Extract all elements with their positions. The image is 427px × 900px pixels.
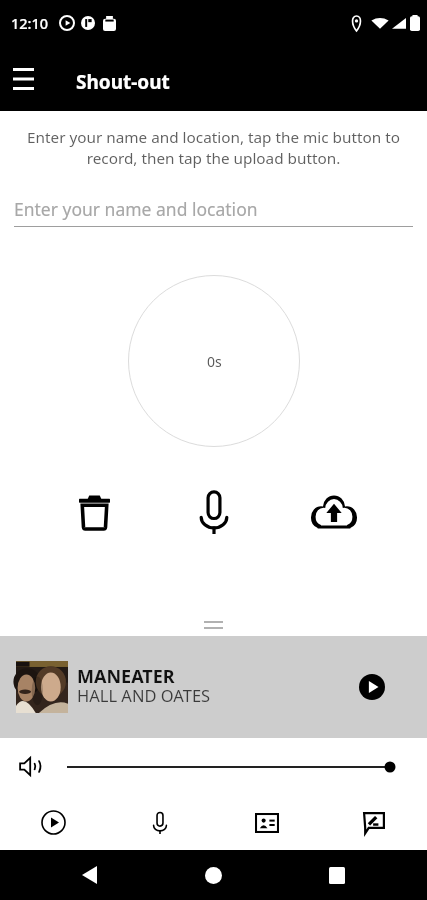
button[interactable]: Recents [309, 850, 364, 900]
staticText: Enter your name and location, tap the mi… [13, 127, 414, 169]
button[interactable]: Review [320, 795, 427, 850]
button[interactable]: Play audio [0, 795, 106, 850]
button[interactable]: Record [188, 482, 240, 542]
button[interactable]: MANEATER [0, 636, 427, 738]
staticText: MANEATER [77, 664, 175, 689]
button[interactable]: Upload [240, 482, 427, 542]
staticText: Enter your name and location [14, 197, 258, 221]
button[interactable]: Photo [213, 795, 320, 850]
staticText: HALL AND OATES [77, 684, 211, 706]
staticText: 0s [207, 352, 222, 371]
button[interactable]: Play [348, 663, 396, 711]
staticText: Shout-out [76, 69, 170, 95]
button[interactable]: Menu [3, 58, 43, 98]
button[interactable]: Home [186, 850, 241, 900]
button[interactable]: Microphone [106, 795, 213, 850]
button[interactable]: Back [62, 850, 117, 900]
button[interactable]: Delete recording [0, 482, 188, 542]
staticText: 12:10 [11, 13, 49, 33]
